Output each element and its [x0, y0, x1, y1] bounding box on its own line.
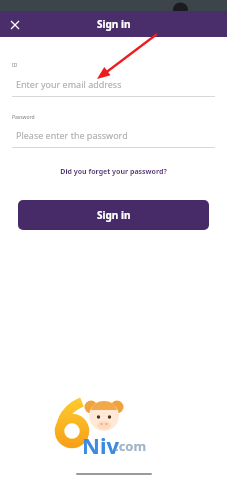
staticText: Sign in: [97, 17, 131, 31]
button[interactable]: Please enter the password: [12, 129, 215, 141]
button[interactable]: Sign in: [18, 200, 209, 230]
staticText: Did you forget your password?: [60, 167, 167, 177]
staticText: Niv: [82, 430, 120, 460]
button[interactable]: Did you forget your password?: [56, 165, 171, 179]
staticText: Sign in: [97, 208, 131, 222]
staticText: Password: [12, 114, 35, 121]
button[interactable]: Close: [6, 16, 23, 33]
staticText: Enter your email address: [16, 78, 122, 90]
staticText: Please enter the password: [16, 129, 128, 141]
staticText: ID: [12, 62, 18, 69]
button[interactable]: Enter your email address: [12, 78, 215, 90]
staticText: .com: [115, 437, 147, 455]
